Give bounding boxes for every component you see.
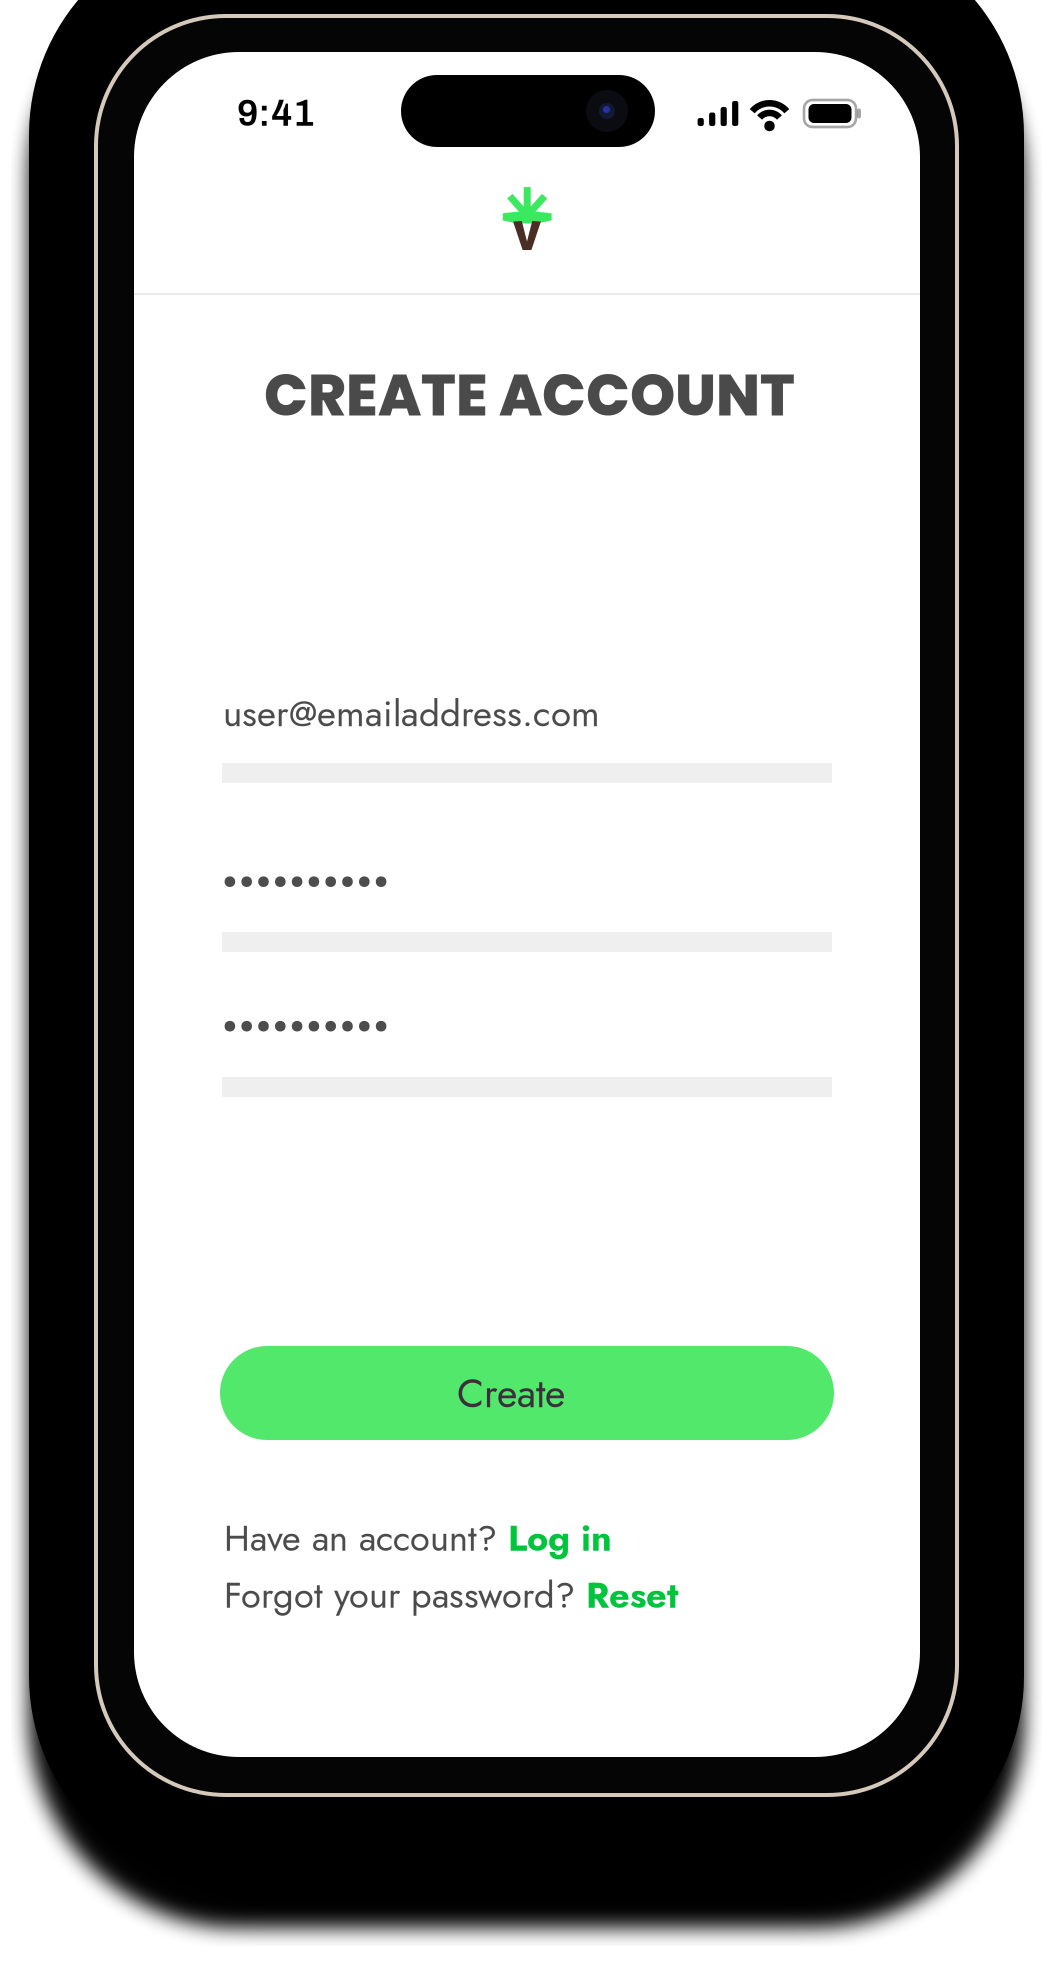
staticText: CREATE ACCOUNT bbox=[264, 355, 795, 436]
staticText: Reset bbox=[586, 1569, 678, 1621]
button[interactable]: Forgot your password? bbox=[224, 1569, 678, 1621]
staticText: Log in bbox=[508, 1512, 612, 1564]
staticText: user@emailaddress.com bbox=[223, 687, 600, 740]
button[interactable]: Have an account? bbox=[224, 1512, 612, 1564]
staticText: Forgot your password? bbox=[224, 1569, 586, 1621]
staticText: Have an account? bbox=[224, 1512, 508, 1564]
staticText: 9:41 bbox=[237, 93, 315, 134]
button[interactable]: Create bbox=[220, 1346, 834, 1440]
staticText: Create bbox=[457, 1365, 565, 1422]
